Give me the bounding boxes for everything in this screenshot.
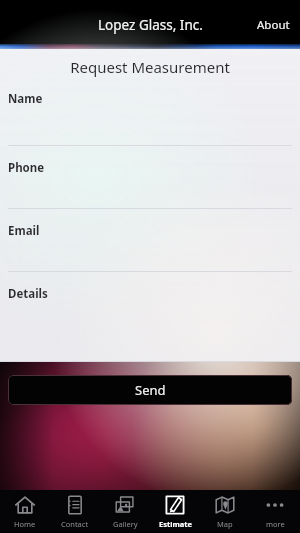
staticText: Details xyxy=(8,286,48,302)
staticText: Name xyxy=(8,91,43,107)
button[interactable]: Estimate xyxy=(150,490,200,533)
staticText: Send xyxy=(135,381,166,399)
staticText: more xyxy=(266,519,285,529)
button[interactable]: Gallery xyxy=(100,490,150,533)
staticText: Lopez Glass, Inc. xyxy=(98,16,203,34)
button[interactable]: Map xyxy=(200,490,250,533)
button[interactable]: Name xyxy=(0,77,300,146)
staticText: Map xyxy=(217,519,233,529)
staticText: Estimate xyxy=(159,519,192,529)
button[interactable]: About xyxy=(247,11,300,39)
button[interactable]: Home xyxy=(0,490,50,533)
button[interactable]: more xyxy=(250,490,300,533)
staticText: Home xyxy=(14,519,36,529)
button[interactable]: Details xyxy=(0,272,300,334)
staticText: Phone xyxy=(8,160,45,176)
staticText: Contact xyxy=(61,519,89,529)
button[interactable]: Send xyxy=(8,375,292,405)
staticText: Request Measurement xyxy=(0,57,300,77)
button[interactable]: Contact xyxy=(50,490,100,533)
staticText: About xyxy=(257,17,290,33)
staticText: Email xyxy=(8,223,40,239)
button[interactable]: Phone xyxy=(0,146,300,209)
staticText: Gallery xyxy=(113,519,138,529)
button[interactable]: Email xyxy=(0,209,300,272)
